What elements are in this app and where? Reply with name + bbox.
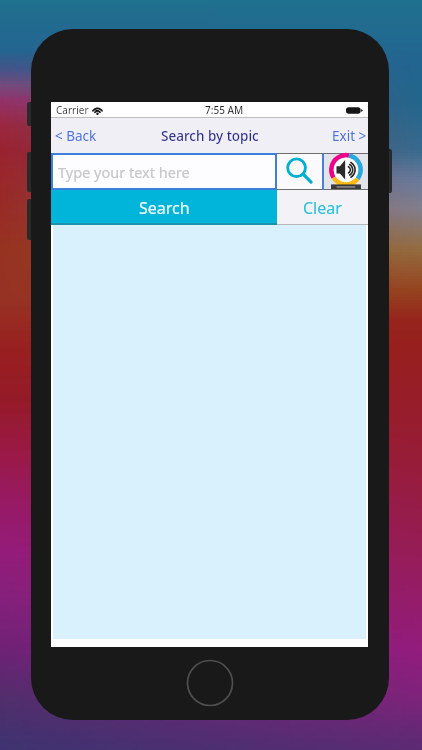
staticText: 7:55 AM <box>205 103 244 117</box>
staticText: Search <box>139 197 190 219</box>
button[interactable]: Exit > <box>326 118 368 153</box>
button[interactable]: Clear <box>277 190 368 225</box>
button[interactable]: Speak text aloud <box>324 153 368 190</box>
button[interactable]: Search <box>51 190 277 225</box>
button[interactable]: < Back <box>51 118 103 153</box>
staticText: Search by topic <box>161 127 259 145</box>
staticText: Exit > <box>332 127 367 145</box>
button[interactable]: Search <box>277 153 322 190</box>
staticText: < Back <box>55 127 97 145</box>
button[interactable]: Type your text here <box>53 155 275 188</box>
staticText: Type your text here <box>58 162 190 182</box>
staticText: Clear <box>303 197 342 219</box>
staticText: Carrier <box>56 103 89 117</box>
